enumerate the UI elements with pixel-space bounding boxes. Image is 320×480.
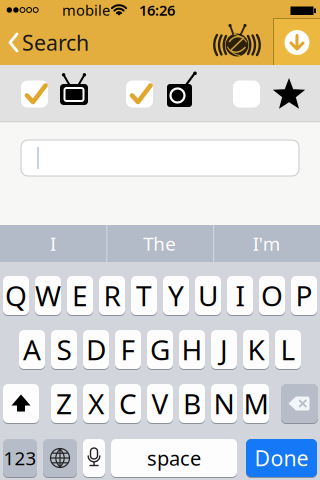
staticText: C [119, 385, 137, 422]
staticText: O [261, 277, 283, 314]
staticText: The [143, 231, 176, 256]
staticText: E [72, 277, 88, 314]
button[interactable]: W [35, 276, 61, 315]
staticText: F [120, 331, 135, 368]
staticText: K [247, 331, 264, 368]
staticText: H [181, 331, 202, 368]
staticText: 123 [3, 446, 36, 470]
button[interactable]: H [179, 330, 205, 369]
button[interactable]: space [111, 439, 237, 477]
staticText: U [198, 277, 218, 314]
button[interactable]: Z [51, 384, 77, 423]
staticText: mobile [62, 0, 110, 20]
staticText: V [151, 385, 168, 422]
staticText: B [183, 385, 201, 422]
staticText: Q [5, 277, 27, 314]
staticText: L [280, 331, 295, 368]
staticText: X [88, 385, 104, 422]
button[interactable]: D [83, 330, 109, 369]
button[interactable]: Q [3, 276, 29, 315]
button[interactable] [21, 140, 299, 176]
staticText: T [136, 277, 152, 314]
button[interactable] [281, 384, 318, 423]
button[interactable]: J [211, 330, 237, 369]
button[interactable]: S [51, 330, 77, 369]
staticText: G [150, 331, 170, 368]
button[interactable]: I'm [213, 225, 319, 262]
button[interactable]: N [211, 384, 237, 423]
button[interactable]: Search [0, 20, 84, 65]
button[interactable]: E [67, 276, 93, 315]
staticText: 16:26 [139, 0, 175, 20]
staticText: Search [22, 28, 89, 57]
button[interactable]: P [291, 276, 317, 315]
button[interactable]: B [179, 384, 205, 423]
button[interactable]: Done [246, 439, 317, 477]
staticText: P [295, 277, 312, 314]
staticText: A [23, 331, 41, 368]
button[interactable]: R [99, 276, 125, 315]
button[interactable]: G [147, 330, 173, 369]
staticText: R [103, 277, 120, 314]
button[interactable] [233, 72, 306, 116]
button[interactable]: T [131, 276, 157, 315]
button[interactable] [21, 72, 88, 116]
button[interactable]: V [147, 384, 173, 423]
button[interactable]: F [115, 330, 141, 369]
button[interactable] [43, 439, 77, 477]
button[interactable]: K [243, 330, 269, 369]
staticText: I [50, 231, 56, 256]
staticText: Y [168, 277, 184, 314]
button[interactable] [3, 384, 39, 423]
staticText: D [86, 331, 106, 368]
button[interactable] [83, 439, 105, 477]
button[interactable]: L [275, 330, 301, 369]
button[interactable] [273, 18, 320, 65]
button[interactable]: I [0, 225, 106, 262]
button[interactable]: A [19, 330, 45, 369]
button[interactable]: C [115, 384, 141, 423]
button[interactable]: M [243, 384, 269, 423]
button[interactable]: U [195, 276, 221, 315]
button[interactable] [126, 72, 197, 116]
staticText: I'm [253, 231, 280, 256]
button[interactable]: X [83, 384, 109, 423]
button[interactable]: The [107, 225, 213, 262]
button[interactable]: O [259, 276, 285, 315]
staticText: space [147, 445, 201, 471]
button[interactable]: I [227, 276, 253, 315]
staticText: I [235, 277, 244, 314]
staticText: J [220, 331, 228, 368]
staticText: Z [56, 385, 72, 422]
staticText: N [213, 385, 234, 422]
button[interactable]: Y [163, 276, 189, 315]
button[interactable]: 123 [3, 439, 37, 477]
staticText: S [56, 331, 71, 368]
staticText: W [35, 277, 61, 314]
staticText: M [243, 385, 268, 422]
staticText: Done [254, 444, 308, 472]
